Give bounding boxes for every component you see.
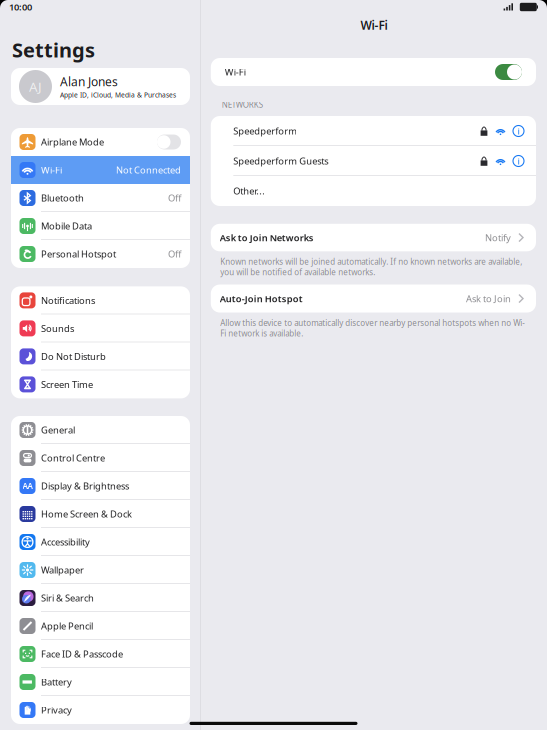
staticText: Other...: [233, 185, 265, 197]
button[interactable]: Wallpaper: [11, 556, 190, 584]
button[interactable]: Accessibility: [11, 528, 190, 556]
button[interactable]: Personal Hotspot: [11, 240, 190, 268]
staticText: Off: [168, 248, 181, 260]
button[interactable]: Home Screen & Dock: [11, 500, 190, 528]
staticText: Airplane Mode: [41, 136, 104, 148]
button[interactable]: Do Not Disturb: [11, 342, 190, 370]
button[interactable]: Apple Pencil: [11, 612, 190, 640]
button[interactable]: Bluetooth: [11, 184, 190, 212]
button[interactable]: General: [11, 416, 190, 444]
button[interactable]: Wi-Fi: [11, 156, 190, 184]
button[interactable]: Mobile Data: [11, 212, 190, 240]
button[interactable]: Siri & Search: [11, 584, 190, 612]
staticText: Do Not Disturb: [41, 350, 106, 363]
staticText: Bluetooth: [41, 192, 84, 204]
staticText: NETWORKS: [222, 99, 263, 110]
staticText: Ask to Join: [466, 292, 511, 305]
button[interactable]: Battery: [11, 668, 190, 696]
staticText: i: [517, 155, 519, 167]
staticText: Off: [168, 192, 181, 204]
button[interactable]: Face ID & Passcode: [11, 640, 190, 668]
button[interactable]: Auto-Join Hotspot: [211, 284, 536, 312]
staticText: Speedperform: [233, 125, 297, 137]
staticText: Siri & Search: [41, 592, 94, 604]
staticText: Notify: [485, 231, 511, 244]
button[interactable]: Speedperform Guests: [211, 146, 536, 176]
staticText: Wi-Fi: [225, 66, 246, 78]
staticText: Apple Pencil: [41, 620, 93, 632]
staticText: General: [41, 424, 75, 436]
staticText: Accessibility: [41, 536, 90, 548]
button[interactable]: Speedperform: [211, 116, 536, 146]
staticText: Alan Jones: [60, 74, 118, 89]
staticText: Ask to Join Networks: [220, 231, 314, 244]
staticText: Control Centre: [41, 452, 105, 464]
staticText: AA: [22, 481, 32, 491]
button[interactable]: Notifications: [11, 286, 190, 314]
staticText: Allow this device to automatically disco…: [220, 317, 525, 339]
staticText: Privacy: [41, 704, 72, 716]
staticText: 10:00: [9, 1, 32, 13]
staticText: Face ID & Passcode: [41, 648, 123, 660]
staticText: Wi-Fi: [360, 17, 387, 33]
button[interactable]: Control Centre: [11, 444, 190, 472]
button[interactable]: Ask to Join Networks: [211, 224, 536, 251]
button[interactable]: Privacy: [11, 696, 190, 724]
staticText: Home Screen & Dock: [41, 508, 132, 520]
button[interactable]: Screen Time: [11, 370, 190, 398]
staticText: Known networks will be joined automatica…: [220, 256, 522, 277]
staticText: Mobile Data: [41, 220, 92, 232]
staticText: Wi-Fi: [41, 164, 62, 176]
button[interactable]: Other...: [211, 176, 536, 206]
staticText: Settings: [12, 36, 95, 63]
staticText: Not Connected: [116, 164, 181, 176]
button[interactable]: Airplane Mode: [11, 128, 190, 156]
staticText: Sounds: [41, 322, 74, 335]
staticText: Wallpaper: [41, 564, 84, 576]
staticText: i: [517, 125, 519, 137]
button[interactable]: AA: [11, 472, 190, 500]
staticText: Notifications: [41, 294, 95, 307]
button[interactable]: AJ: [11, 68, 190, 105]
staticText: Battery: [41, 676, 72, 688]
button[interactable]: Sounds: [11, 314, 190, 342]
staticText: Apple ID, iCloud, Media & Purchases: [60, 90, 176, 99]
staticText: Personal Hotspot: [41, 248, 116, 260]
staticText: Screen Time: [41, 378, 93, 391]
staticText: Display & Brightness: [41, 480, 129, 492]
staticText: Auto-Join Hotspot: [220, 292, 303, 305]
staticText: AJ: [29, 78, 42, 95]
staticText: Speedperform Guests: [233, 155, 328, 167]
